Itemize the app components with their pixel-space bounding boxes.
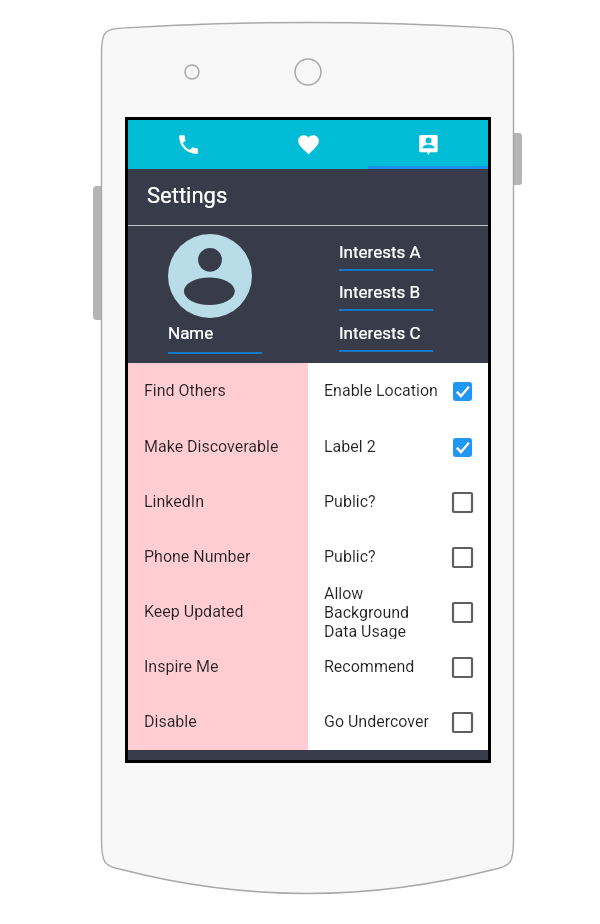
staticText: Interests C — [339, 323, 421, 343]
button[interactable]: Toggle — [453, 603, 472, 622]
button[interactable]: Interests B — [339, 282, 433, 311]
button[interactable]: Interests A — [339, 242, 433, 271]
button[interactable]: Interests C — [339, 323, 433, 352]
staticText: LinkedIn — [144, 492, 204, 511]
staticText: Label 2 — [324, 437, 376, 456]
button[interactable]: Contacts — [368, 120, 488, 169]
button[interactable]: Find Others — [128, 363, 488, 419]
staticText: Name — [168, 323, 214, 343]
button[interactable]: Toggle — [453, 548, 472, 567]
staticText: Settings — [147, 183, 228, 209]
button[interactable]: Toggle — [453, 382, 472, 401]
staticText: Disable — [144, 712, 197, 731]
button[interactable]: Favorites — [248, 120, 368, 169]
staticText: Phone Number — [144, 547, 251, 566]
staticText: Interests B — [339, 282, 421, 302]
staticText: Public? — [324, 547, 376, 566]
staticText: Inspire Me — [144, 657, 219, 676]
button[interactable]: Toggle — [453, 493, 472, 512]
button[interactable]: Disable — [128, 695, 488, 750]
staticText: Enable Location — [324, 381, 438, 400]
button[interactable]: Toggle — [453, 658, 472, 677]
button[interactable]: Toggle — [453, 713, 472, 732]
staticText: Go Undercover — [324, 712, 429, 731]
button[interactable]: Calls — [128, 120, 248, 169]
staticText: Interests A — [339, 242, 421, 262]
button[interactable]: Phone Number — [128, 530, 488, 585]
staticText: Make Discoverable — [144, 437, 279, 456]
button[interactable]: Inspire Me — [128, 640, 488, 695]
staticText: Find Others — [144, 381, 226, 400]
button[interactable]: LinkedIn — [128, 475, 488, 530]
button[interactable]: Toggle — [453, 438, 472, 457]
staticText: Public? — [324, 492, 376, 511]
button[interactable]: Keep Updated — [128, 585, 488, 640]
staticText: Allow Background Data Usage — [324, 584, 444, 639]
staticText: Recommend — [324, 657, 415, 676]
button[interactable]: Make Discoverable — [128, 419, 488, 475]
staticText: Keep Updated — [144, 602, 244, 621]
